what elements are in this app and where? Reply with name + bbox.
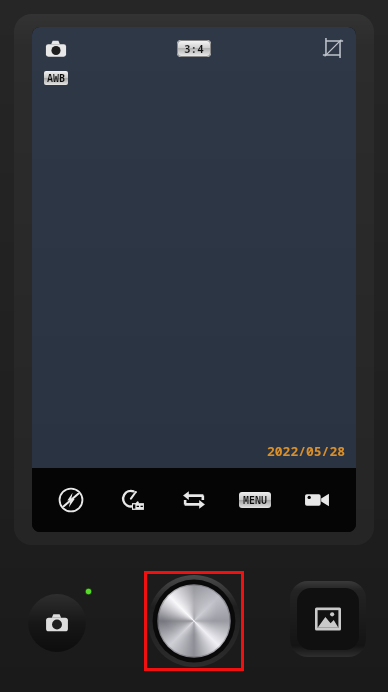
staticText: 3:4 <box>184 41 204 56</box>
staticText: MENU <box>243 493 267 507</box>
button[interactable]: MENU <box>233 478 277 522</box>
button[interactable]: Shutter <box>144 571 244 671</box>
button[interactable]: Camera mode <box>28 594 86 652</box>
button[interactable]: Flash off <box>49 478 93 522</box>
button[interactable]: AWB <box>47 71 65 85</box>
button[interactable]: Switch camera <box>172 478 216 522</box>
button[interactable]: 3:4 <box>184 41 204 56</box>
button[interactable]: Crop <box>322 37 344 59</box>
button[interactable]: Shooting mode <box>44 37 68 61</box>
staticText: 2022/05/28 <box>267 442 346 460</box>
button[interactable]: Gallery <box>290 581 366 657</box>
button[interactable]: Video mode <box>295 478 339 522</box>
button[interactable]: Self timer off <box>111 478 155 522</box>
staticText: AWB <box>47 71 65 85</box>
